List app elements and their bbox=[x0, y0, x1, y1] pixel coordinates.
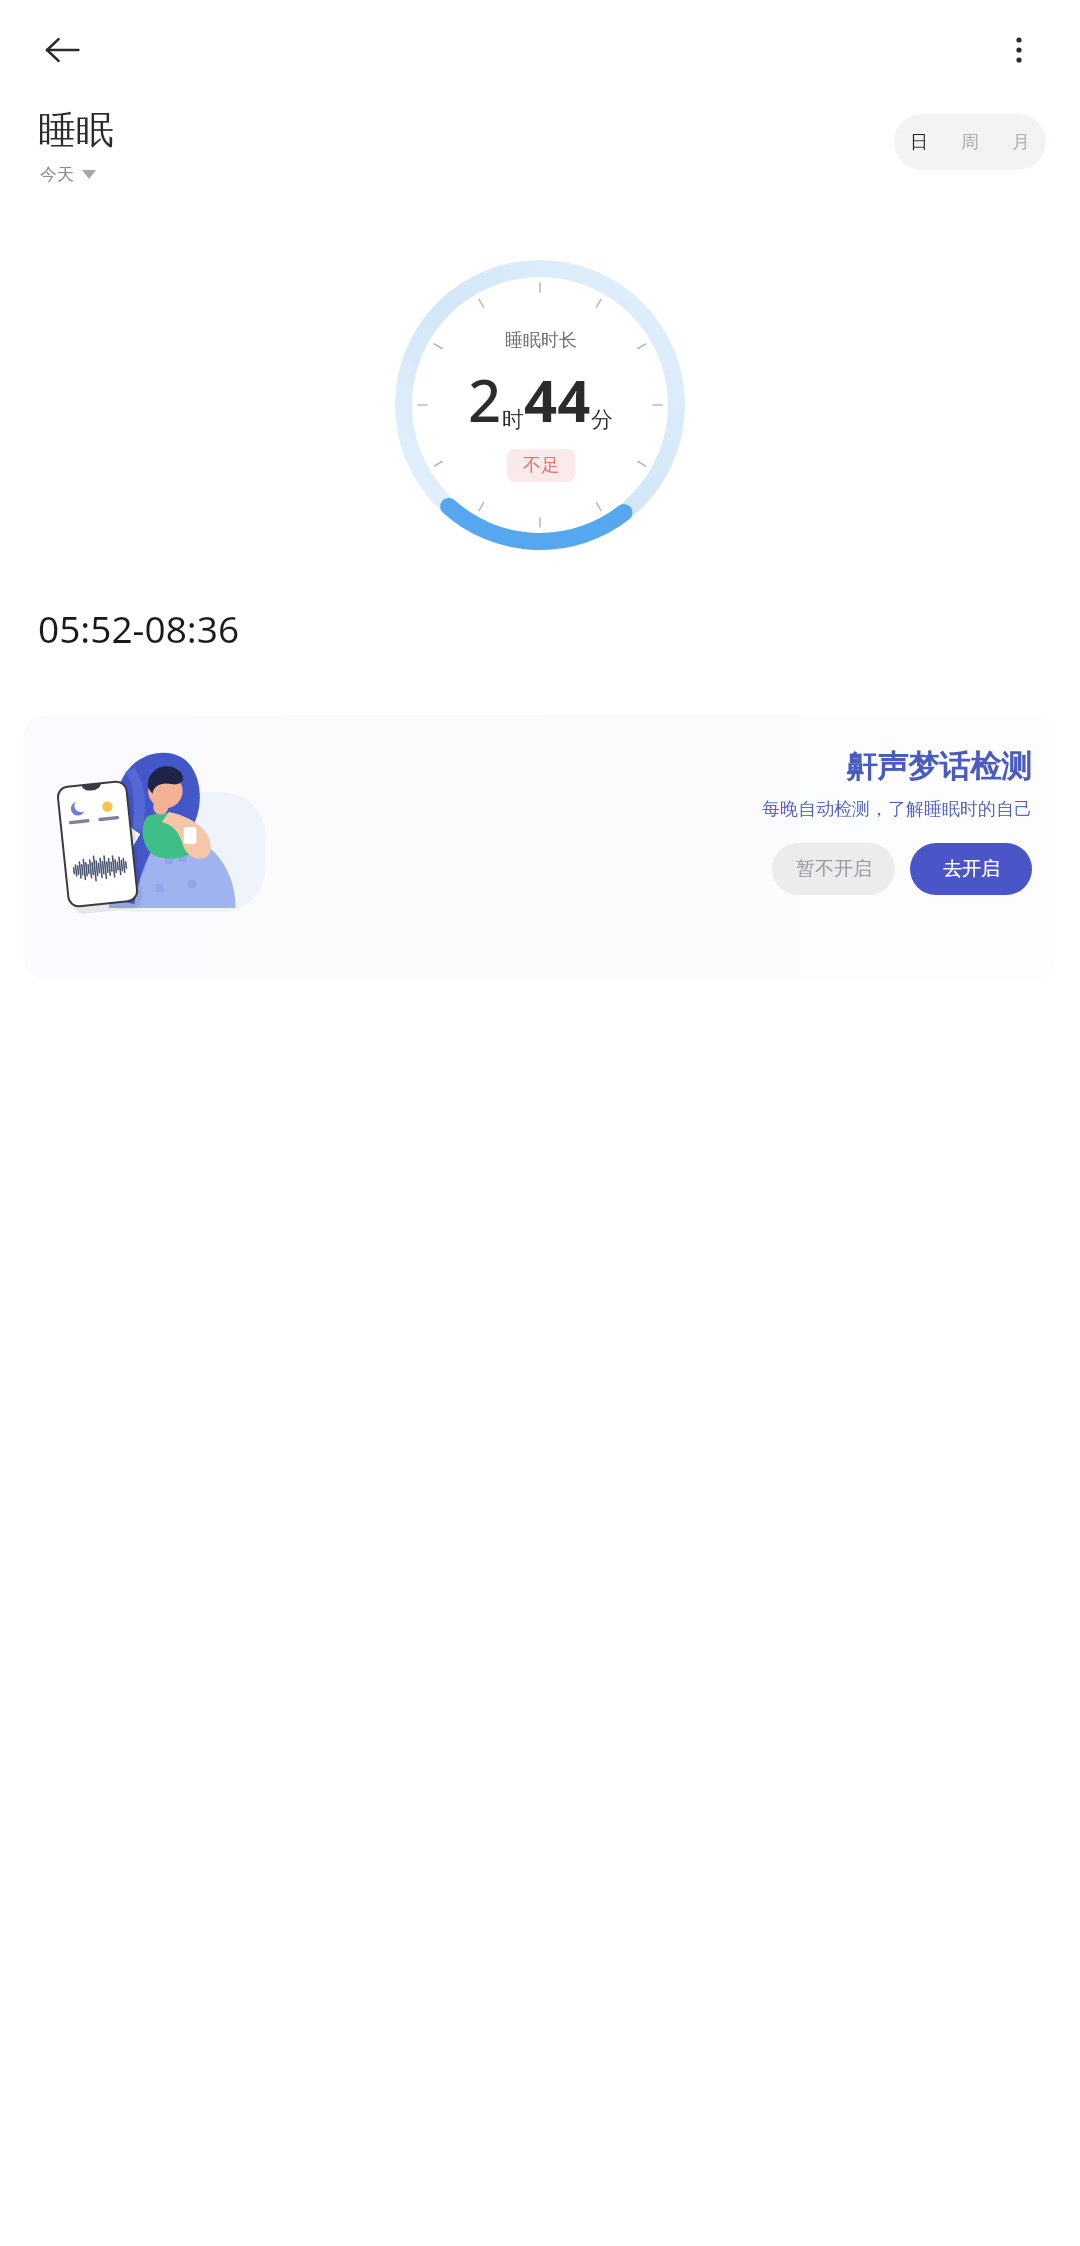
staticText: 2 bbox=[468, 360, 502, 439]
button[interactable]: 暂不开启 bbox=[772, 843, 895, 895]
staticText: 44 bbox=[524, 360, 591, 439]
staticText: 周 bbox=[961, 131, 979, 154]
staticText: 05:52-08:36 bbox=[38, 603, 240, 653]
button[interactable]: 月 bbox=[995, 114, 1046, 170]
button[interactable]: 周 bbox=[944, 114, 995, 170]
staticText: 不足 bbox=[523, 454, 559, 477]
button[interactable]: 今天 bbox=[38, 162, 98, 187]
staticText: 睡眠 bbox=[38, 106, 114, 154]
staticText: 每晚自动检测，了解睡眠时的自己 bbox=[762, 798, 1032, 821]
staticText: 时 bbox=[502, 406, 524, 434]
button[interactable]: More options bbox=[992, 23, 1046, 77]
button[interactable]: Back bbox=[34, 22, 90, 78]
staticText: 暂不开启 bbox=[796, 857, 872, 881]
button[interactable]: 鼾声梦话检测 bbox=[24, 715, 1056, 980]
staticText: 分 bbox=[591, 406, 613, 434]
staticText: 睡眠时长 bbox=[505, 329, 577, 352]
staticText: 鼾声梦话检测 bbox=[846, 747, 1032, 786]
staticText: 去开启 bbox=[943, 857, 1000, 881]
button[interactable]: 去开启 bbox=[910, 843, 1032, 895]
staticText: 今天 bbox=[40, 164, 74, 185]
staticText: 月 bbox=[1012, 131, 1030, 154]
button[interactable]: 日 bbox=[894, 114, 944, 170]
staticText: 日 bbox=[910, 131, 928, 154]
